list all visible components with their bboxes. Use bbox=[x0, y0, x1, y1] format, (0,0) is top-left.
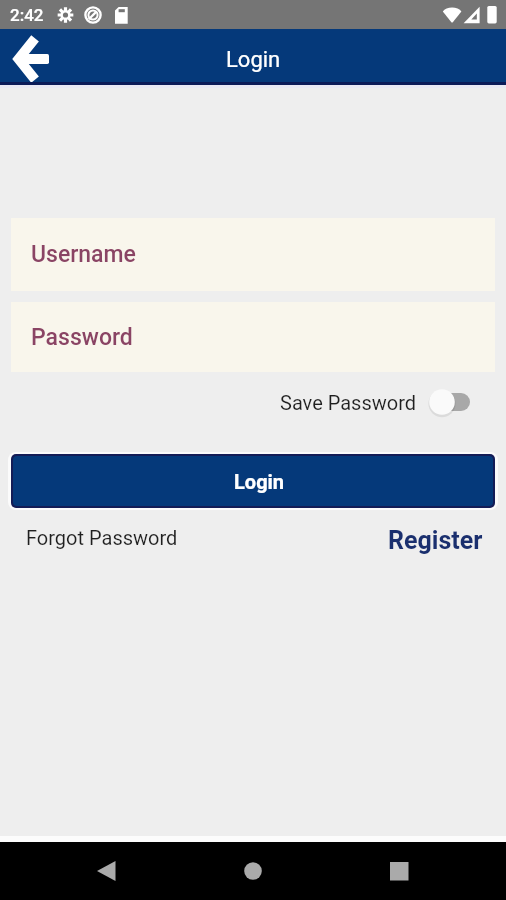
button[interactable]: Login bbox=[13, 456, 493, 506]
staticText: 2:42 bbox=[10, 5, 44, 25]
staticText: Login bbox=[226, 47, 281, 73]
button[interactable]: Password bbox=[11, 302, 495, 372]
button[interactable]: Back bbox=[66, 842, 146, 900]
button[interactable]: Recent apps bbox=[367, 842, 447, 900]
button[interactable]: Forgot Password bbox=[0, 526, 178, 549]
staticText: Login bbox=[234, 470, 285, 493]
button[interactable]: Save Password bbox=[432, 387, 470, 417]
staticText: Password bbox=[31, 324, 133, 351]
button[interactable]: Register bbox=[388, 526, 506, 555]
staticText: Username bbox=[31, 241, 136, 268]
staticText: Save Password bbox=[280, 391, 417, 414]
button[interactable]: Username bbox=[11, 218, 495, 291]
button[interactable]: Back bbox=[0, 29, 63, 82]
button[interactable]: Home bbox=[213, 842, 293, 900]
